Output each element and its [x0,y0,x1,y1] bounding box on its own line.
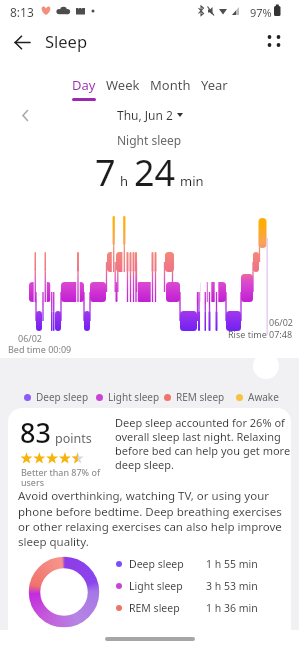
staticText: 24 [134,148,176,197]
staticText: min [180,172,204,190]
staticText: 8:13 [10,4,34,20]
button[interactable] [6,26,38,58]
staticText: 7 [95,148,116,197]
staticText: Deep sleep [129,557,184,571]
staticText: REM sleep [129,601,180,615]
staticText: 83 [20,414,51,451]
button[interactable] [258,25,290,57]
staticText: h [120,172,129,190]
button[interactable]: Week [106,76,140,101]
staticText: points [55,430,92,447]
button[interactable]: Thu, Jun 2 [117,107,183,123]
staticText: 3 h 53 min [206,579,258,593]
staticText: 97% [250,5,272,20]
staticText: REM sleep [176,390,225,404]
button[interactable]: Year [201,76,228,101]
staticText: 06/02 [18,332,42,344]
staticText: Day [72,76,96,94]
staticText: Deep sleep [36,390,89,404]
staticText: Night sleep [117,132,182,148]
staticText: Avoid overthinking, watching TV, or usin… [18,488,291,549]
button[interactable]: Day [72,76,96,101]
staticText: Sleep [45,30,88,52]
staticText: Month [150,76,191,94]
staticText: Awake [248,390,279,404]
staticText: Week [106,76,140,94]
staticText: Rise time 07:48 [228,328,293,340]
button[interactable]: Month [150,76,191,101]
staticText: Thu, Jun 2 [117,107,173,123]
staticText: 1 h 55 min [206,557,258,571]
staticText: Bed time 00:09 [8,343,72,355]
staticText: Light sleep [129,579,183,593]
staticText: Year [201,76,228,94]
staticText: 06/02 [269,316,293,328]
staticText: 1 h 36 min [206,601,258,615]
staticText: Better than 87% of users [21,466,100,489]
staticText: Deep sleep accounted for 26% of overall … [115,415,291,472]
staticText: Light sleep [108,390,160,404]
